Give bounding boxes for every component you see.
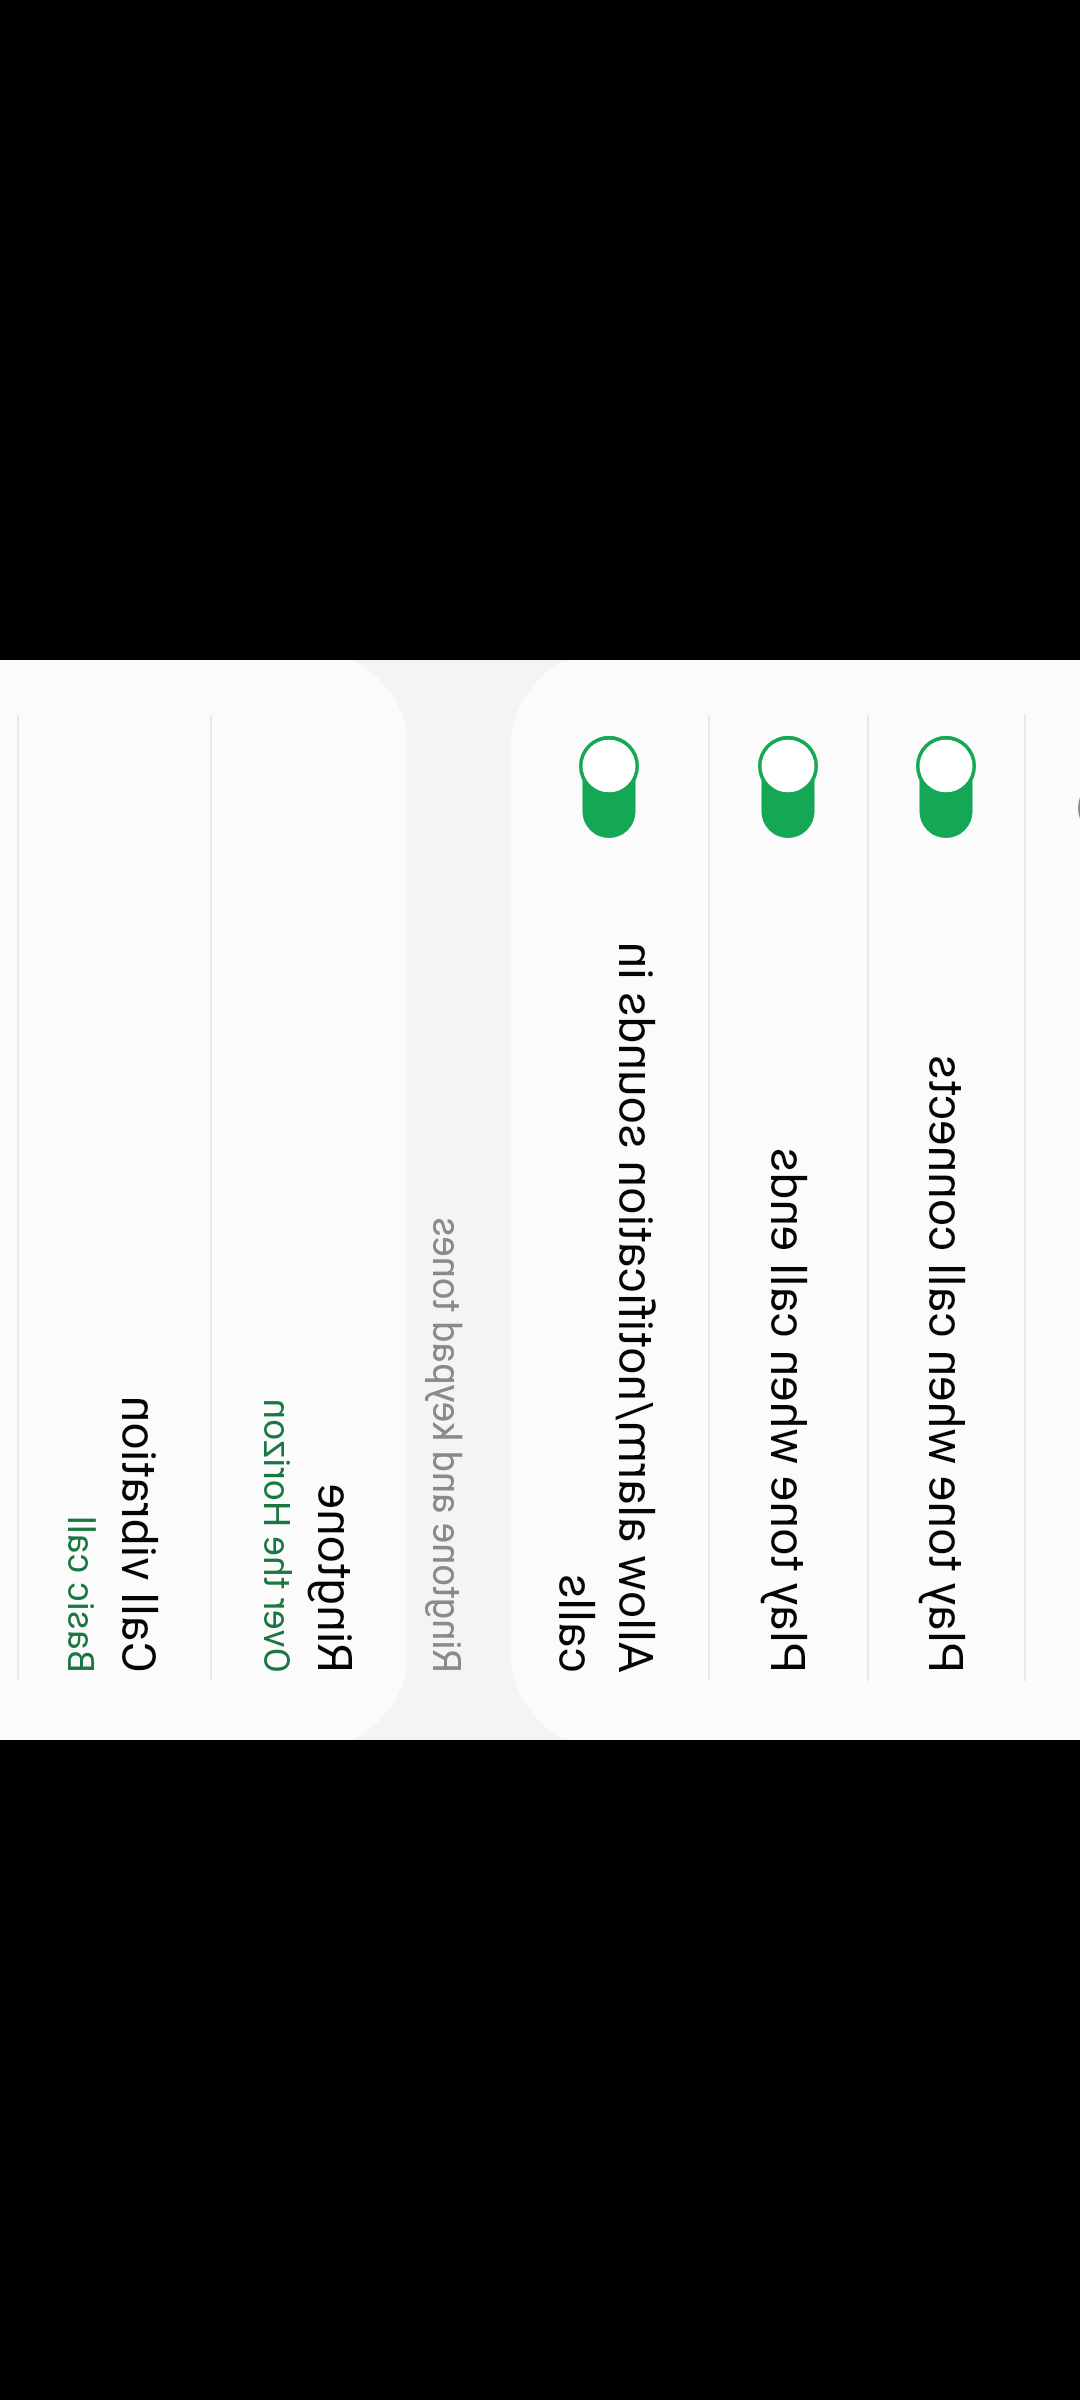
button[interactable]: Play tone when call connects (916, 736, 976, 838)
button[interactable]: Ringtone (212, 660, 407, 1740)
staticText: Ringtone (307, 1483, 363, 1673)
staticText: Play tone when call ends (760, 1147, 816, 1673)
button[interactable]: Call vibration (19, 660, 210, 1740)
button[interactable]: Allow alarm/notification sounds in calls (579, 736, 639, 838)
button[interactable]: Vibrate while ringing (1078, 736, 1080, 838)
button[interactable]: Play tone when call ends (758, 736, 818, 838)
staticText: Ringtone and keypad tones (423, 1217, 468, 1673)
button[interactable]: Play tone when call connects (869, 660, 1024, 1740)
staticText: Play tone when call connects (918, 1054, 974, 1673)
button[interactable]: Allow alarm/notification sounds in calls (511, 660, 708, 1740)
staticText: Call vibration (111, 1395, 167, 1673)
staticText: Allow alarm/notification sounds in calls (547, 893, 664, 1673)
staticText: Basic call (59, 1515, 102, 1673)
staticText: Over the Horizon (255, 1398, 298, 1673)
button[interactable]: Play tone when call ends (710, 660, 867, 1740)
